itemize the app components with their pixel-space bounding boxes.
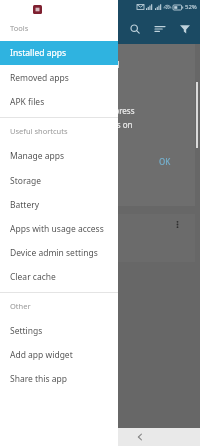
button[interactable]: Search: [126, 20, 144, 38]
staticText: Apps with usage access: [10, 223, 104, 235]
button[interactable]: Device admin settings: [0, 241, 118, 265]
staticText: Manage apps: [10, 150, 65, 162]
staticText: Tools: [10, 23, 29, 33]
staticText: Clear cache: [10, 271, 56, 283]
button[interactable]: Share this app: [0, 367, 118, 391]
staticText: File manager, date: [14, 227, 70, 236]
button[interactable]: Apps with usage access: [0, 217, 118, 241]
staticText: Other: [10, 301, 31, 311]
staticText: Useful shortcuts: [10, 126, 68, 136]
button[interactable]: Sort: [151, 20, 169, 38]
button[interactable]: Removed apps: [0, 66, 118, 90]
staticText: 52%: [185, 3, 197, 11]
button[interactable]: Add app widget: [0, 343, 118, 367]
staticText: Installed apps: [10, 47, 66, 59]
staticText: 68 MB: [14, 253, 34, 262]
staticText: select it. Use longer single press: [14, 105, 135, 116]
staticText: Battery: [10, 199, 40, 211]
staticText: OK: [159, 156, 171, 167]
staticText: Storage: [10, 175, 42, 187]
staticText: APK files: [10, 96, 45, 108]
staticText: to perform batch operations on: [14, 119, 133, 130]
button[interactable]: Filter: [176, 20, 194, 38]
staticText: Add app widget: [10, 349, 73, 361]
button[interactable]: Battery: [0, 193, 118, 217]
button[interactable]: Storage: [0, 169, 118, 193]
button[interactable]: Settings: [0, 319, 118, 343]
button[interactable]: More options: [171, 218, 183, 230]
staticText: Device admin settings: [10, 247, 98, 259]
button[interactable]: Manage apps: [0, 144, 118, 168]
button[interactable]: APK files: [0, 90, 118, 114]
button[interactable]: OK: [14, 152, 189, 170]
staticText: This is a list of your installed: [14, 59, 120, 70]
button[interactable]: Clear cache: [0, 265, 118, 289]
button[interactable]: Installed apps: [0, 41, 118, 65]
button[interactable]: Back: [130, 428, 150, 446]
staticText: Share this app: [10, 373, 68, 385]
staticText: apps. Tap one in order to: [14, 82, 108, 93]
staticText: Removed apps: [10, 72, 69, 84]
staticText: Settings: [10, 325, 43, 337]
